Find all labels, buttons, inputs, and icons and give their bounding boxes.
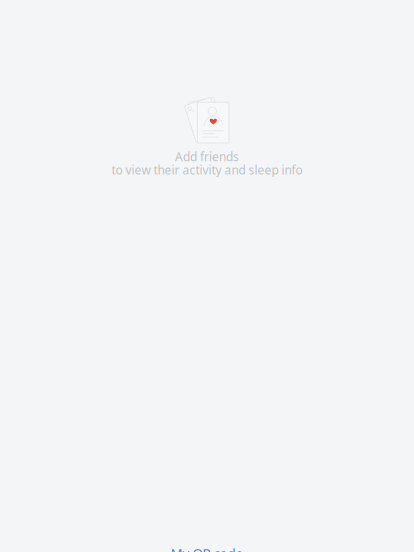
button[interactable]: My QR code <box>162 538 251 552</box>
staticText: to view their activity and sleep info <box>111 162 302 178</box>
staticText: Add friends <box>175 148 239 164</box>
staticText: My QR code <box>170 544 243 552</box>
